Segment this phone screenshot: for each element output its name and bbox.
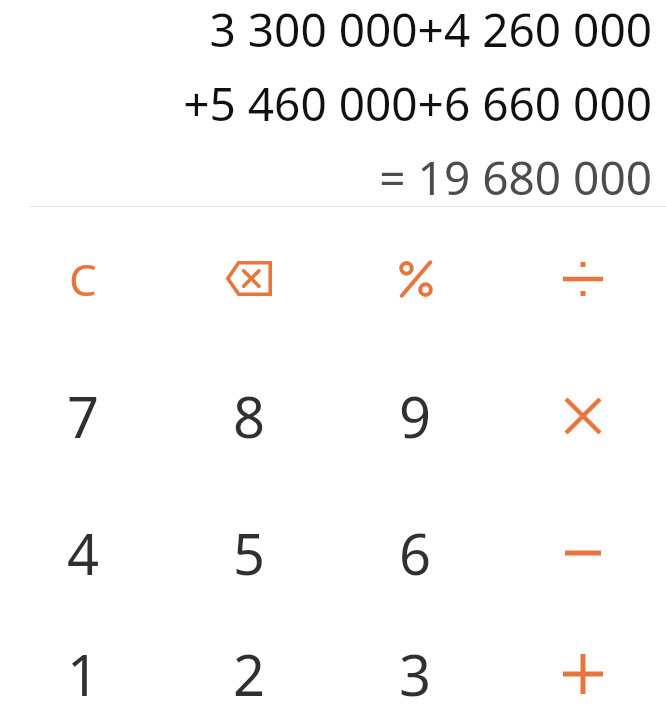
button[interactable]: 2 bbox=[166, 621, 332, 726]
button[interactable]: Minus bbox=[499, 484, 666, 621]
button[interactable]: Plus bbox=[499, 621, 666, 726]
staticText: 2 bbox=[233, 636, 266, 712]
staticText: C bbox=[69, 249, 97, 309]
staticText: 9 bbox=[399, 378, 432, 454]
button[interactable]: 5 bbox=[166, 484, 332, 621]
button[interactable]: 8 bbox=[166, 347, 332, 484]
button[interactable]: 9 bbox=[332, 347, 499, 484]
staticText: +5 460 000+6 660 000 bbox=[20, 72, 652, 135]
staticText: 6 bbox=[399, 515, 432, 591]
button[interactable]: 6 bbox=[332, 484, 499, 621]
button[interactable]: C bbox=[0, 210, 166, 347]
staticText: 4 bbox=[67, 515, 100, 591]
staticText: 3 bbox=[399, 636, 432, 712]
button[interactable]: Multiply bbox=[499, 347, 666, 484]
staticText: 1 bbox=[67, 636, 100, 712]
button[interactable]: Divide bbox=[499, 210, 666, 347]
button[interactable]: 7 bbox=[0, 347, 166, 484]
button[interactable]: Backspace bbox=[166, 210, 332, 347]
staticText: 5 bbox=[233, 515, 266, 591]
staticText: 7 bbox=[67, 378, 100, 454]
button[interactable]: Percent bbox=[332, 210, 499, 347]
button[interactable]: 3 bbox=[332, 621, 499, 726]
button[interactable]: 1 bbox=[0, 621, 166, 726]
staticText: 8 bbox=[233, 378, 266, 454]
staticText: = 19 680 000 bbox=[20, 146, 652, 204]
staticText: 3 300 000+4 260 000 bbox=[20, 0, 652, 61]
button[interactable]: 4 bbox=[0, 484, 166, 621]
